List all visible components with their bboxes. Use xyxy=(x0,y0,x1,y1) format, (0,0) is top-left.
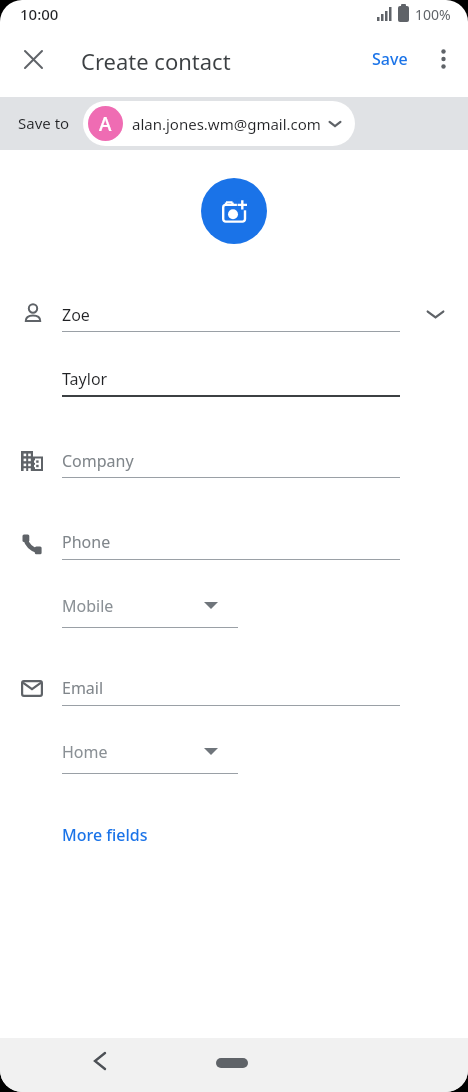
button[interactable]: Mobile xyxy=(62,590,238,628)
button[interactable] xyxy=(425,41,461,77)
button[interactable] xyxy=(424,303,447,326)
staticText: Save xyxy=(372,48,408,70)
button[interactable]: More fields xyxy=(50,812,160,858)
staticText: Save to xyxy=(18,113,70,133)
staticText: Phone xyxy=(62,531,111,553)
staticText: Company xyxy=(62,450,134,472)
staticText: alan.jones.wm@gmail.com xyxy=(132,114,321,134)
button[interactable]: Save xyxy=(360,36,420,82)
staticText: 10:00 xyxy=(20,4,59,24)
staticText: Mobile xyxy=(62,595,114,617)
staticText: Create contact xyxy=(81,46,231,76)
staticText: More fields xyxy=(62,824,148,846)
staticText: Taylor xyxy=(62,368,108,390)
staticText: Home xyxy=(62,741,108,763)
button[interactable]: A xyxy=(83,101,355,146)
button[interactable] xyxy=(80,1041,120,1081)
button[interactable] xyxy=(201,178,267,244)
button[interactable] xyxy=(13,39,53,79)
button[interactable] xyxy=(216,1058,248,1068)
staticText: Email xyxy=(62,677,104,699)
staticText: A xyxy=(99,111,112,137)
staticText: Zoe xyxy=(62,304,90,326)
button[interactable]: Home xyxy=(62,736,238,774)
staticText: 100% xyxy=(415,5,451,24)
